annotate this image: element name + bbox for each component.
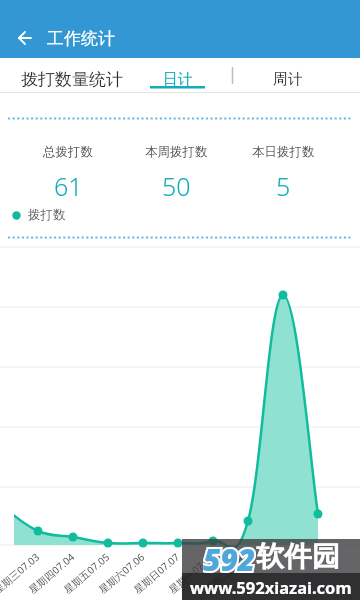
staticText: 拨打数	[28, 207, 66, 223]
staticText: 周计	[273, 70, 303, 89]
staticText: 5	[276, 169, 291, 199]
button[interactable]: 工作统计	[18, 18, 115, 58]
staticText: 软件园	[256, 539, 340, 573]
staticText: 工作统计	[47, 28, 115, 49]
staticText: 61	[54, 169, 83, 199]
staticText: 本周拨打数	[145, 144, 208, 160]
staticText: 日计	[163, 70, 193, 89]
staticText: 592	[203, 539, 256, 573]
staticText: 50	[162, 169, 191, 199]
button[interactable]: 日计	[150, 63, 205, 95]
staticText: 总拨打数	[43, 144, 93, 160]
button[interactable]: 拨打数量统计	[0, 63, 150, 95]
staticText: www.592xiazai.com	[190, 576, 352, 598]
staticText: 592	[203, 539, 256, 573]
staticText: 拨打数量统计	[21, 69, 123, 90]
staticText: 本日拨打数	[252, 144, 315, 160]
button[interactable]: 周计	[260, 63, 315, 95]
